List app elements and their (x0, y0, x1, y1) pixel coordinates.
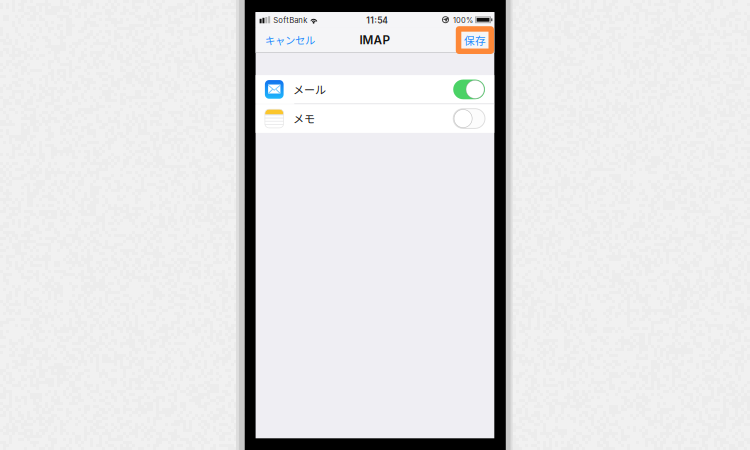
staticText: 100% (453, 16, 473, 25)
button[interactable]: メール (256, 75, 494, 104)
staticText: 11:54 (366, 15, 388, 25)
staticText: SoftBank (273, 16, 307, 25)
button[interactable]: キャンセル (256, 27, 323, 53)
staticText: 保存 (464, 32, 486, 48)
staticText: メモ (293, 110, 315, 126)
staticText: IMAP (359, 33, 390, 47)
staticText: メール (293, 81, 326, 97)
button[interactable]: メモ (256, 104, 494, 133)
staticText: キャンセル (265, 32, 315, 47)
button[interactable]: 保存 (458, 29, 491, 51)
